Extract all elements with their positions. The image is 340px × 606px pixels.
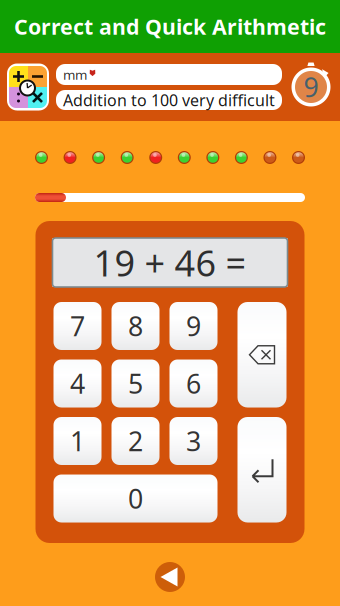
staticText: Correct and Quick Arithmetic xyxy=(14,12,326,41)
button[interactable]: Backspace xyxy=(237,302,286,407)
staticText: 6 xyxy=(186,366,201,401)
button[interactable]: 5 xyxy=(111,359,159,407)
button[interactable]: 1 xyxy=(53,417,101,465)
button[interactable]: 4 xyxy=(53,359,101,407)
button[interactable]: 0 xyxy=(53,474,217,522)
button[interactable]: 7 xyxy=(53,302,101,350)
button[interactable]: Back xyxy=(148,559,192,595)
button[interactable]: 9 xyxy=(169,302,217,350)
staticText: Addition to 100 very difficult xyxy=(63,89,275,111)
staticText: 2 xyxy=(128,423,143,459)
staticText: 3 xyxy=(186,423,201,459)
staticText: 1 xyxy=(70,423,85,459)
staticText: 7 xyxy=(70,308,85,344)
staticText: 9 xyxy=(186,308,201,344)
staticText: mm xyxy=(63,66,87,83)
button[interactable]: 3 xyxy=(169,417,217,465)
staticText: 8 xyxy=(128,308,143,344)
button[interactable]: Enter xyxy=(237,417,286,522)
button[interactable]: 6 xyxy=(169,359,217,407)
staticText: 9 xyxy=(303,69,318,105)
staticText: 4 xyxy=(70,366,85,401)
staticText: 5 xyxy=(128,366,143,401)
button[interactable]: 2 xyxy=(111,417,159,465)
staticText: 0 xyxy=(128,481,143,516)
staticText: 19 + 46 = xyxy=(93,239,246,286)
button[interactable]: 8 xyxy=(111,302,159,350)
